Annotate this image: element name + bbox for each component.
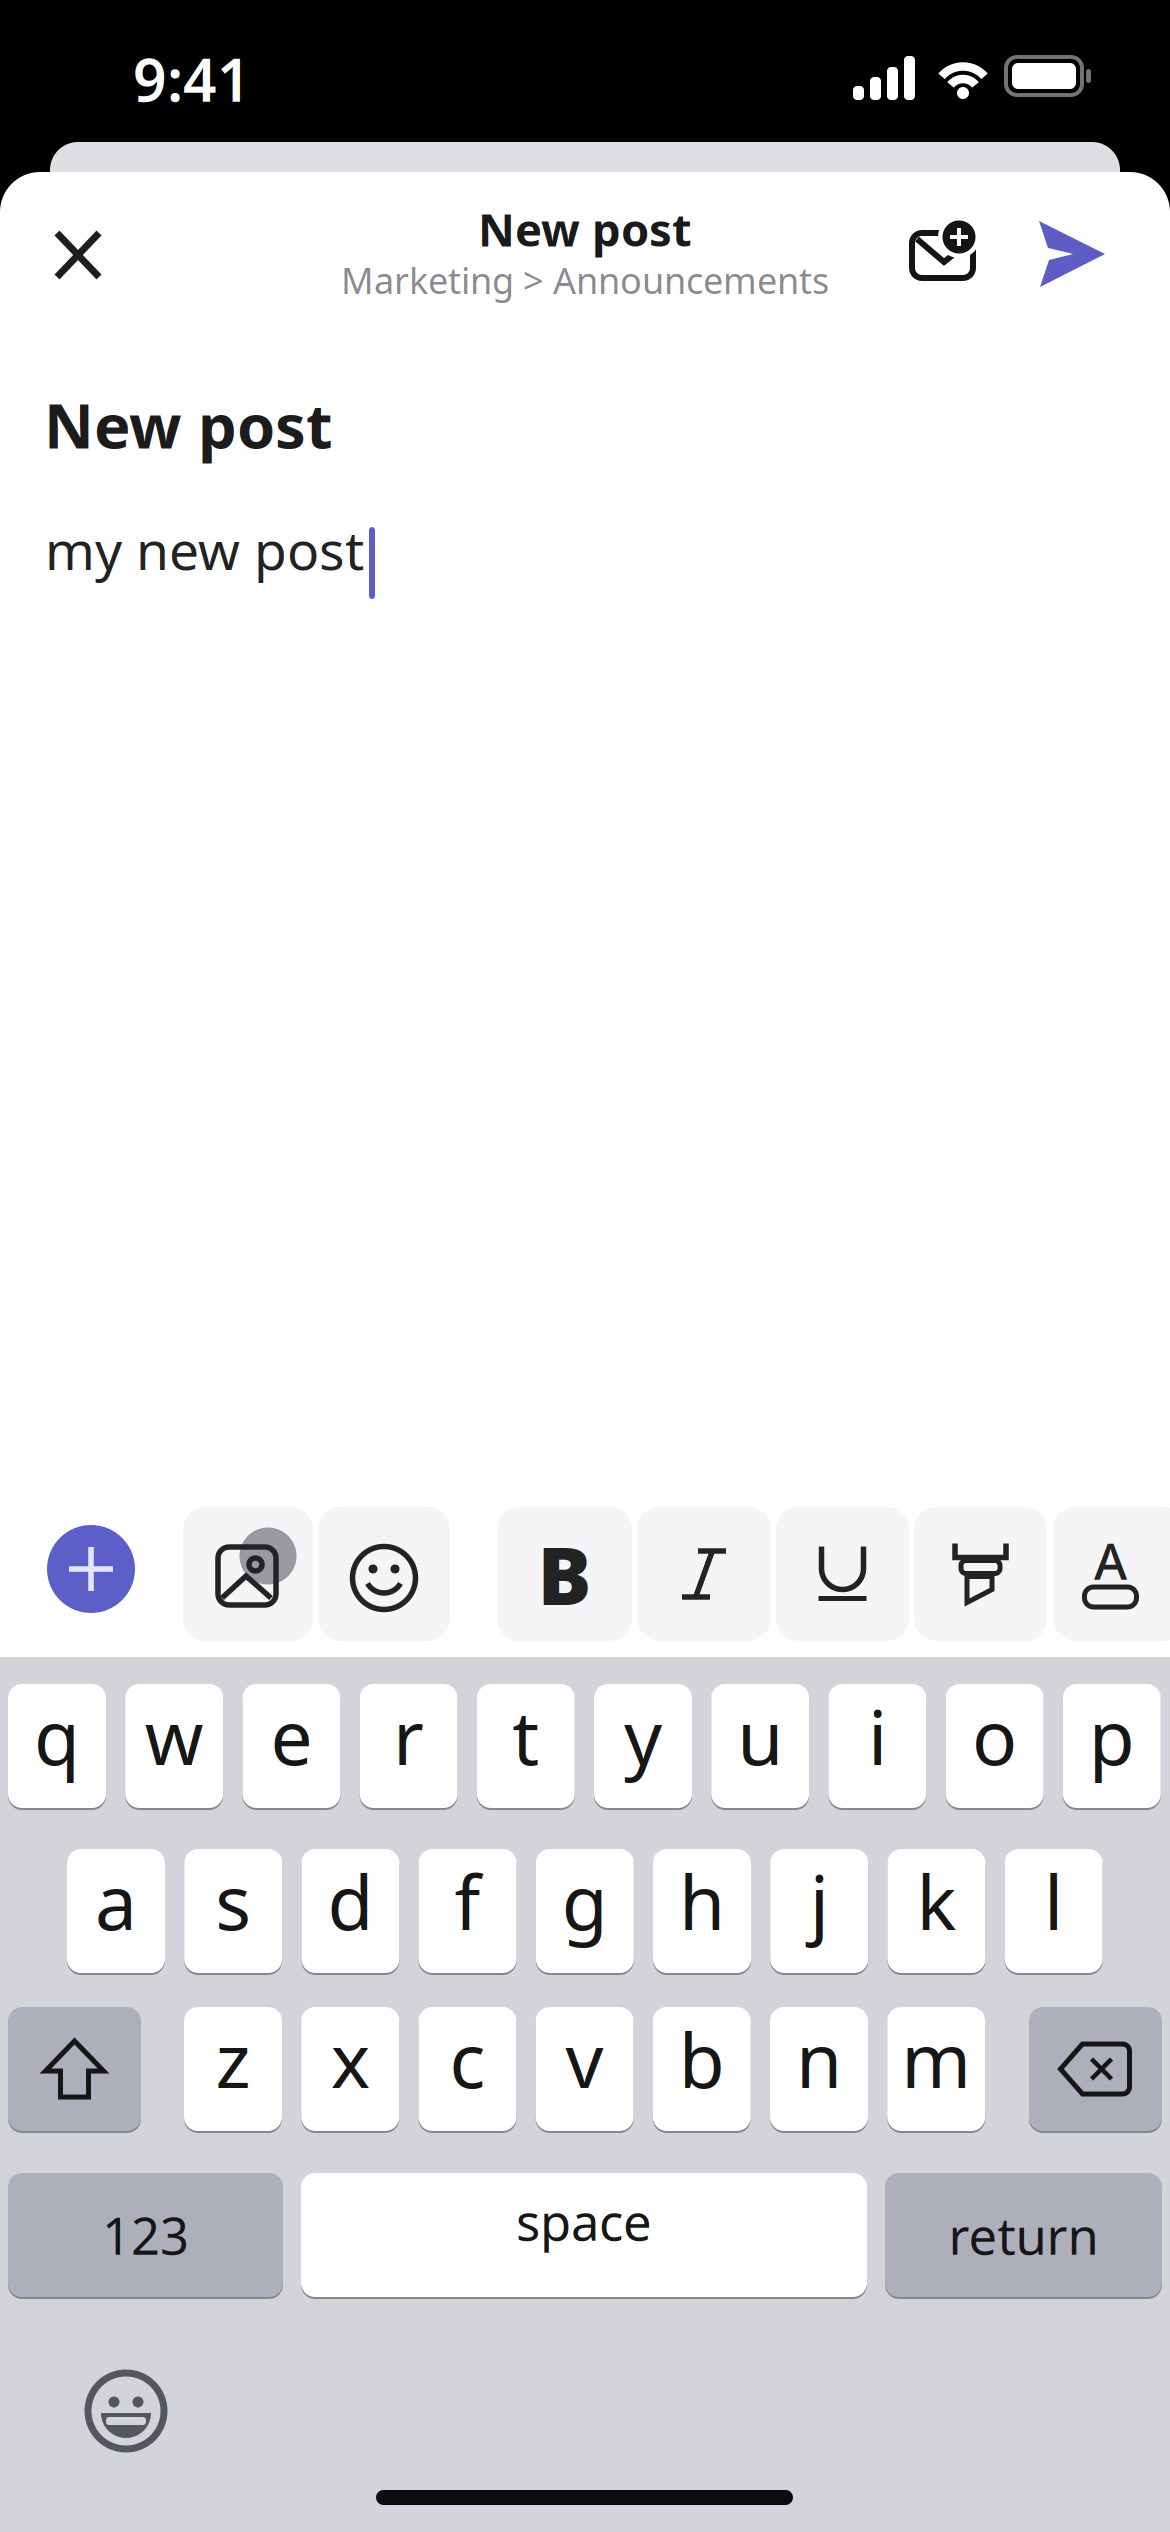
button[interactable]: h: [653, 1848, 751, 1974]
staticText: s: [215, 1851, 251, 1951]
staticText: m: [901, 2009, 971, 2109]
staticText: n: [796, 2009, 842, 2109]
button[interactable]: b: [653, 2006, 751, 2132]
button[interactable]: p: [1063, 1683, 1161, 1809]
button[interactable]: s: [184, 1848, 282, 1974]
button[interactable]: r: [360, 1683, 458, 1809]
staticText: v: [566, 2009, 604, 2109]
button[interactable]: v: [536, 2006, 634, 2132]
button[interactable]: return: [885, 2172, 1162, 2298]
staticText: d: [327, 1851, 373, 1951]
staticText: f: [455, 1851, 481, 1951]
staticText: w: [145, 1686, 204, 1786]
staticText: l: [1044, 1851, 1063, 1951]
button[interactable]: d: [301, 1848, 399, 1974]
staticText: c: [449, 2009, 485, 2109]
button[interactable]: y: [594, 1683, 692, 1809]
button[interactable]: j: [770, 1848, 868, 1974]
staticText: B: [537, 1521, 591, 1627]
staticText: j: [810, 1851, 829, 1951]
staticText: New post: [44, 384, 333, 465]
button[interactable]: z: [184, 2006, 282, 2132]
button[interactable]: g: [536, 1848, 634, 1974]
staticText: p: [1089, 1686, 1135, 1786]
button[interactable]: Add: [47, 1525, 135, 1613]
button[interactable]: i: [828, 1683, 926, 1809]
button[interactable]: w: [125, 1683, 223, 1809]
staticText: y: [624, 1686, 662, 1786]
button[interactable]: m: [887, 2006, 985, 2132]
button[interactable]: Italic: [637, 1507, 771, 1641]
button[interactable]: k: [887, 1848, 985, 1974]
button[interactable]: c: [418, 2006, 516, 2132]
staticText: q: [34, 1686, 80, 1786]
button[interactable]: t: [477, 1683, 575, 1809]
staticText: space: [516, 2187, 652, 2255]
button[interactable]: Shift: [8, 2006, 141, 2132]
button[interactable]: Bold: [497, 1507, 632, 1641]
staticText: 9:41: [133, 40, 251, 118]
button[interactable]: l: [1005, 1848, 1103, 1974]
button[interactable]: Underline: [776, 1507, 909, 1641]
staticText: a: [95, 1851, 137, 1951]
button[interactable]: Emoji: [76, 2361, 176, 2461]
staticText: h: [679, 1851, 725, 1951]
button[interactable]: Send: [1024, 206, 1120, 302]
button[interactable]: Emoji: [318, 1507, 450, 1641]
staticText: r: [393, 1686, 424, 1786]
staticText: g: [562, 1851, 608, 1951]
staticText: x: [331, 2009, 370, 2109]
staticText: A: [1094, 1526, 1127, 1594]
staticText: t: [512, 1686, 539, 1786]
button[interactable]: Close: [33, 210, 123, 300]
button[interactable]: q: [8, 1683, 106, 1809]
staticText: e: [270, 1686, 312, 1786]
staticText: return: [948, 2201, 1098, 2269]
button[interactable]: n: [770, 2006, 868, 2132]
button[interactable]: space: [301, 2172, 867, 2298]
button[interactable]: a: [67, 1848, 165, 1974]
staticText: i: [868, 1686, 887, 1786]
staticText: k: [916, 1851, 956, 1951]
staticText: o: [972, 1686, 1017, 1786]
button[interactable]: 123: [8, 2172, 283, 2298]
button[interactable]: o: [946, 1683, 1044, 1809]
button[interactable]: Highlight: [914, 1507, 1047, 1641]
staticText: Marketing > Announcements: [341, 256, 829, 304]
staticText: my new post: [45, 514, 364, 585]
button[interactable]: Insert image: [183, 1507, 313, 1641]
button[interactable]: Font color: [1053, 1507, 1170, 1641]
button[interactable]: u: [711, 1683, 809, 1809]
staticText: b: [679, 2009, 725, 2109]
button[interactable]: e: [242, 1683, 340, 1809]
staticText: New post: [478, 199, 692, 259]
button[interactable]: f: [419, 1848, 517, 1974]
staticText: 123: [102, 2201, 189, 2269]
staticText: z: [215, 2009, 250, 2109]
button[interactable]: New message with attachment: [901, 208, 1001, 304]
button[interactable]: Delete: [1029, 2006, 1162, 2132]
button[interactable]: x: [301, 2006, 399, 2132]
staticText: u: [737, 1686, 783, 1786]
